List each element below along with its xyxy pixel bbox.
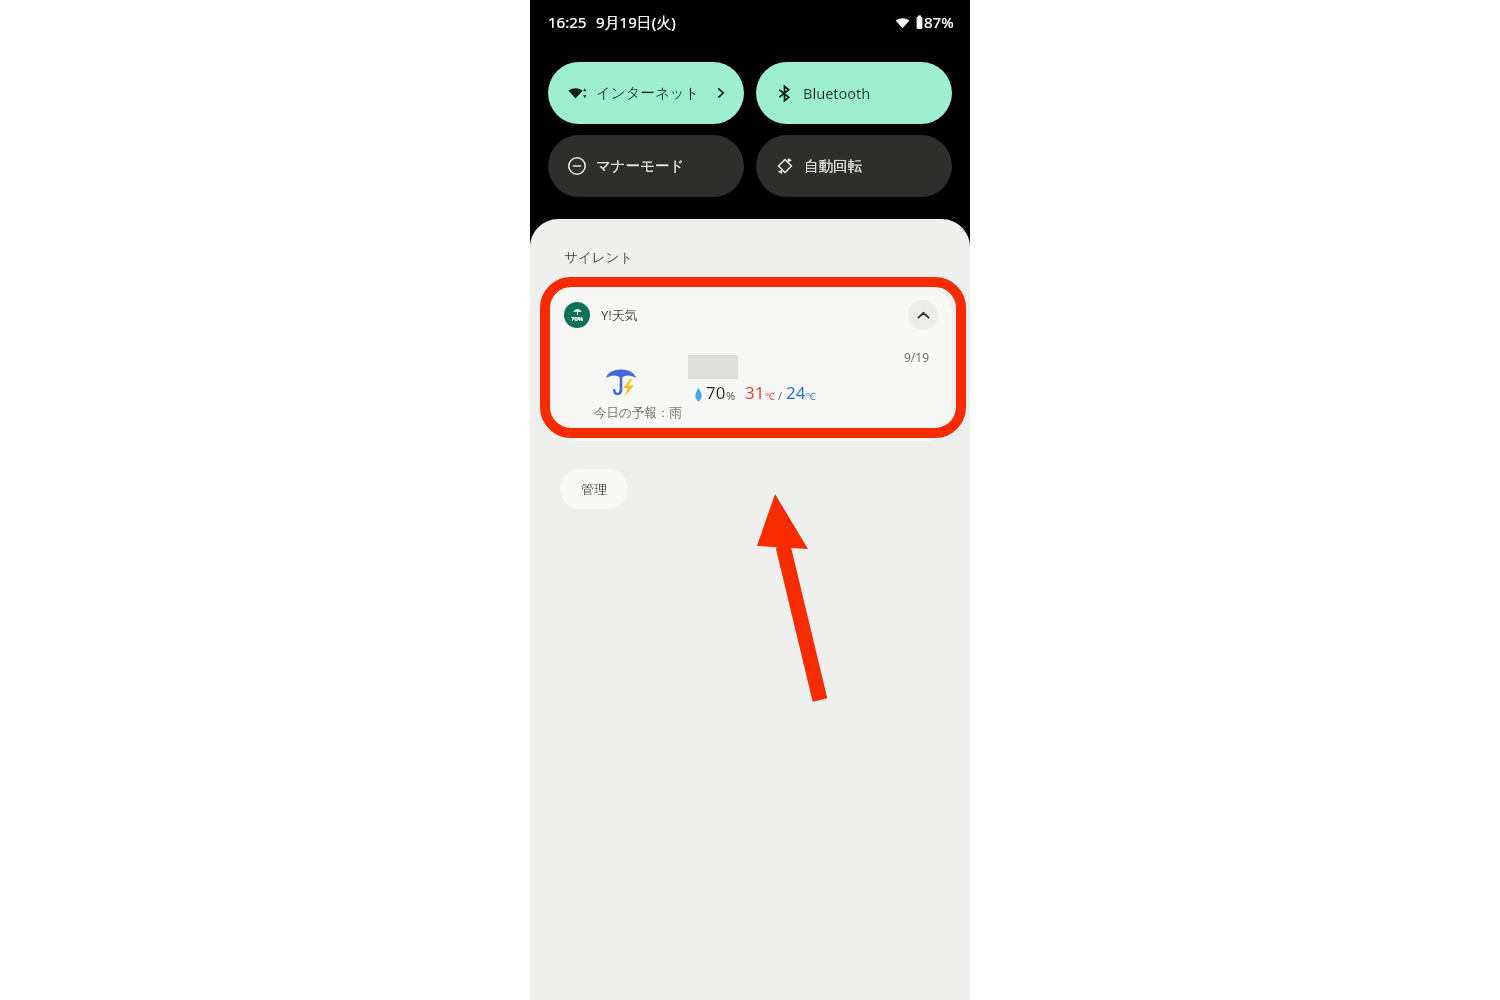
staticText: / bbox=[778, 388, 783, 403]
button[interactable]: Bluetooth bbox=[756, 62, 952, 124]
staticText: ℃ bbox=[806, 389, 816, 403]
button[interactable]: Collapse notification bbox=[908, 300, 938, 330]
button[interactable]: 70% bbox=[548, 287, 952, 441]
staticText: 自動回転 bbox=[804, 157, 862, 175]
staticText: 今日の予報：雨 bbox=[594, 405, 682, 421]
staticText: % bbox=[726, 388, 736, 403]
staticText: 70% bbox=[571, 315, 584, 323]
staticText: 24 bbox=[786, 381, 806, 404]
staticText: サイレント bbox=[564, 249, 634, 266]
staticText: 管理 bbox=[581, 481, 607, 497]
staticText: 87% bbox=[924, 12, 954, 32]
staticText: ℃ bbox=[765, 389, 775, 403]
staticText: インターネット bbox=[596, 84, 700, 102]
staticText: 16:25 bbox=[548, 12, 587, 32]
staticText: 9/19 bbox=[904, 349, 930, 365]
button[interactable]: 自動回転 bbox=[756, 135, 952, 197]
button[interactable]: 管理 bbox=[560, 469, 628, 509]
staticText: 9月19日(火) bbox=[596, 12, 676, 32]
button[interactable]: マナーモード bbox=[548, 135, 744, 197]
staticText: Bluetooth bbox=[803, 83, 871, 103]
staticText: 70 bbox=[706, 381, 726, 404]
staticText: 31 bbox=[745, 381, 765, 404]
staticText: マナーモード bbox=[596, 157, 685, 175]
button[interactable]: インターネット bbox=[548, 62, 744, 124]
staticText: Y!天気 bbox=[601, 306, 638, 324]
